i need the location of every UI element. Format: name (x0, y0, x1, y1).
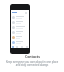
button[interactable] (11, 35, 29, 40)
button[interactable] (11, 40, 29, 45)
button[interactable]: Search (11, 10, 29, 15)
button[interactable] (11, 30, 29, 35)
staticText: Contacts (25, 54, 40, 59)
button[interactable] (11, 20, 29, 25)
button[interactable]: Settings (24, 45, 29, 48)
button[interactable]: Contacts (11, 45, 15, 48)
button[interactable] (11, 25, 29, 30)
staticText: Keep everyone you care about in one plac… (4, 60, 60, 66)
button[interactable]: Favorites (15, 45, 19, 48)
button[interactable] (11, 15, 29, 20)
button[interactable]: Groups (19, 45, 24, 48)
